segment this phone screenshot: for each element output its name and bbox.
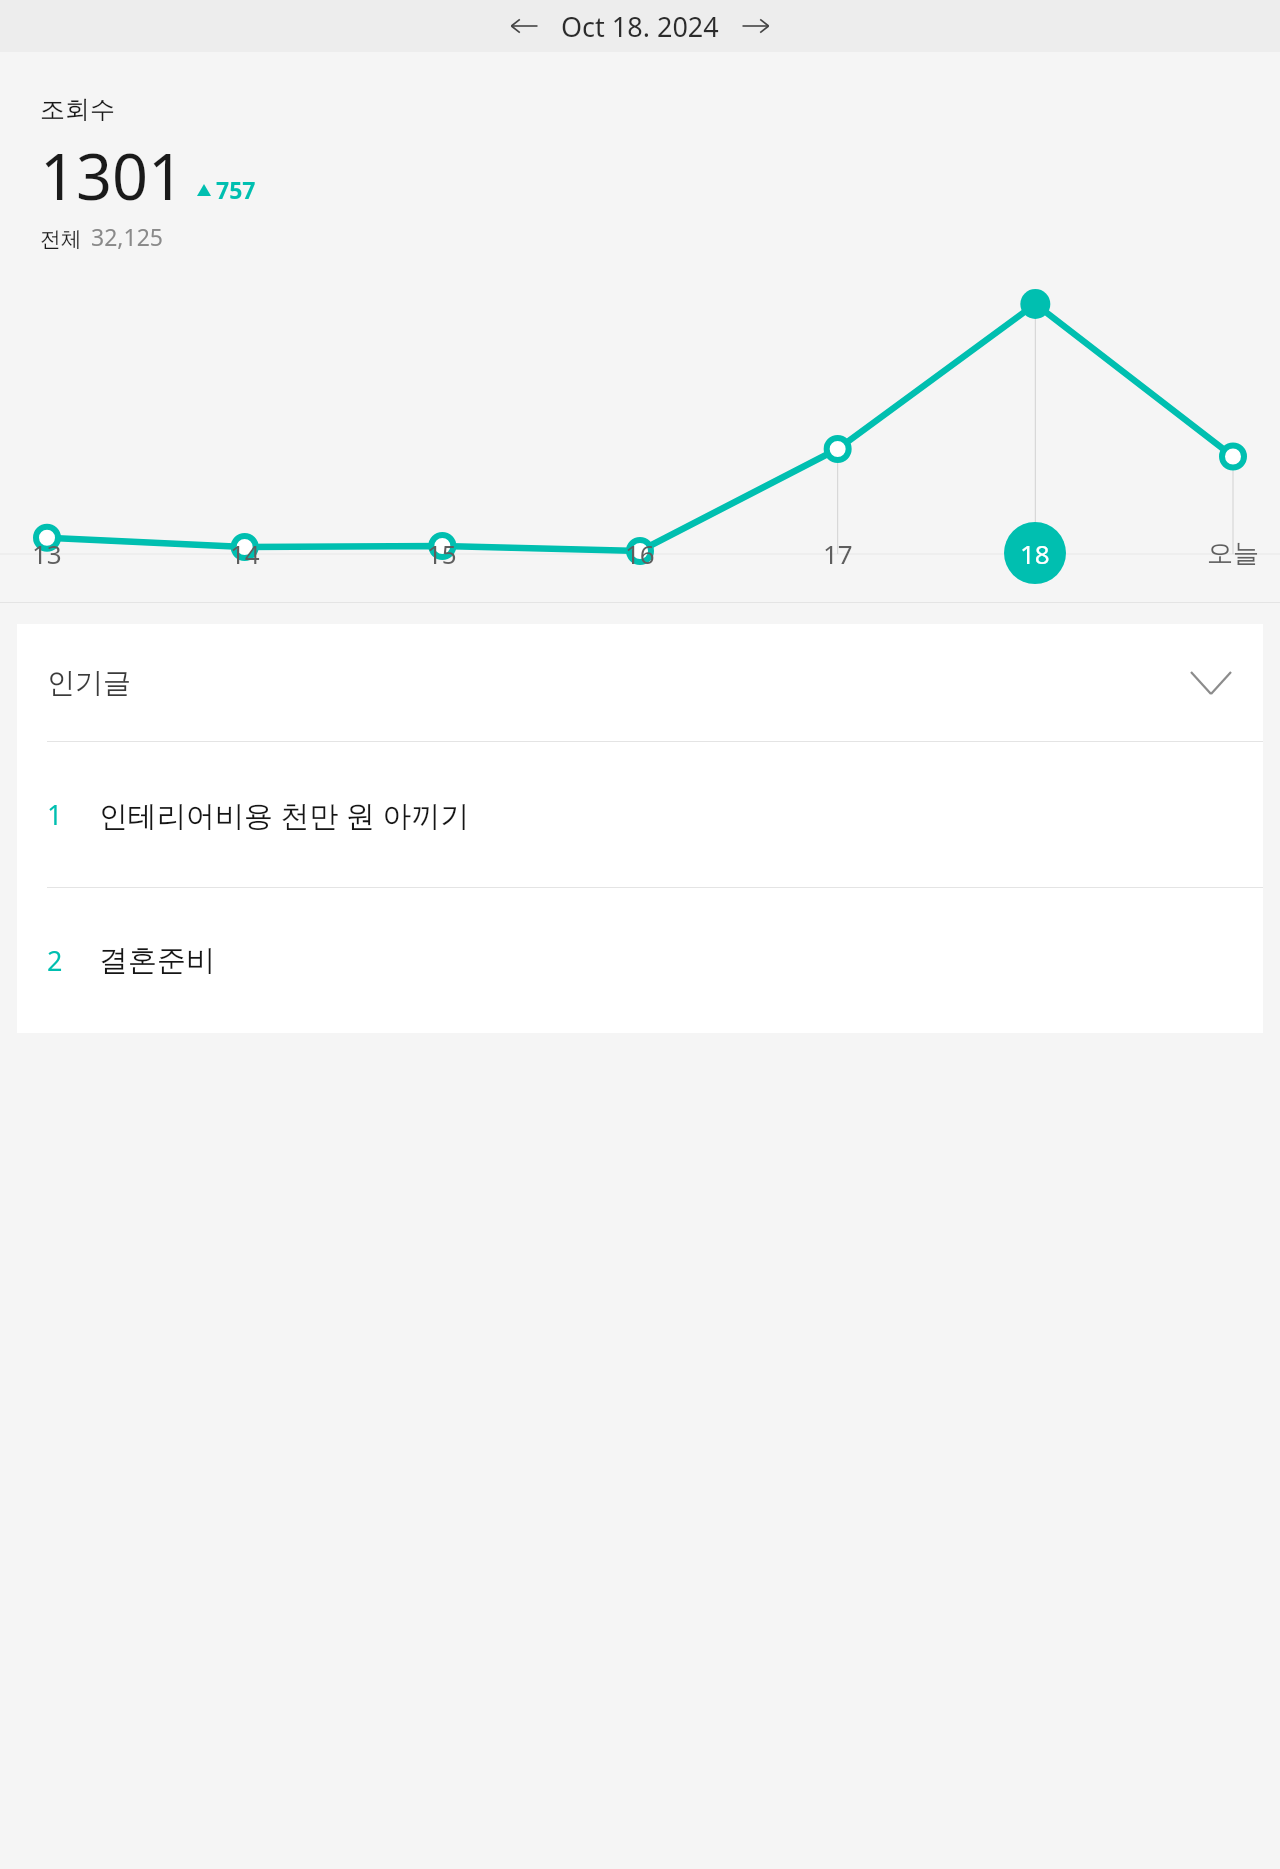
staticText: 결혼준비 xyxy=(99,942,215,979)
button[interactable]: 17 xyxy=(807,522,869,584)
button[interactable]: 오늘 xyxy=(1202,522,1264,584)
staticText: 인테리어비용 천만 원 아끼기 xyxy=(99,795,470,835)
button[interactable]: 16 xyxy=(609,522,671,584)
staticText: 오늘 xyxy=(1207,537,1259,570)
staticText: Oct 18. 2024 xyxy=(561,8,719,45)
button[interactable]: 13 xyxy=(16,522,78,584)
staticText: 17 xyxy=(823,536,853,571)
staticText: 2 xyxy=(47,942,63,979)
staticText: 1 xyxy=(47,796,63,833)
button[interactable]: Previous day xyxy=(501,3,547,49)
staticText: 전체 xyxy=(40,226,82,252)
button[interactable]: 2 xyxy=(17,888,1263,1033)
staticText: 16 xyxy=(625,536,655,571)
staticText: 14 xyxy=(230,536,260,571)
button[interactable]: 18 xyxy=(1004,522,1066,584)
staticText: 32,125 xyxy=(91,221,163,252)
button[interactable]: 1 xyxy=(17,742,1263,887)
button[interactable]: Next day xyxy=(733,3,779,49)
staticText: 757 xyxy=(216,174,256,205)
button[interactable]: 14 xyxy=(214,522,276,584)
button[interactable]: 15 xyxy=(411,522,473,584)
staticText: 13 xyxy=(32,536,62,571)
other: Expand popular posts xyxy=(1189,661,1233,705)
staticText: 18 xyxy=(1020,536,1050,571)
staticText: 15 xyxy=(427,536,457,571)
staticText: 1301 xyxy=(40,133,185,219)
staticText: 인기글 xyxy=(47,665,131,700)
staticText: 조회수 xyxy=(40,94,115,125)
button[interactable]: 인기글 xyxy=(17,624,1263,741)
